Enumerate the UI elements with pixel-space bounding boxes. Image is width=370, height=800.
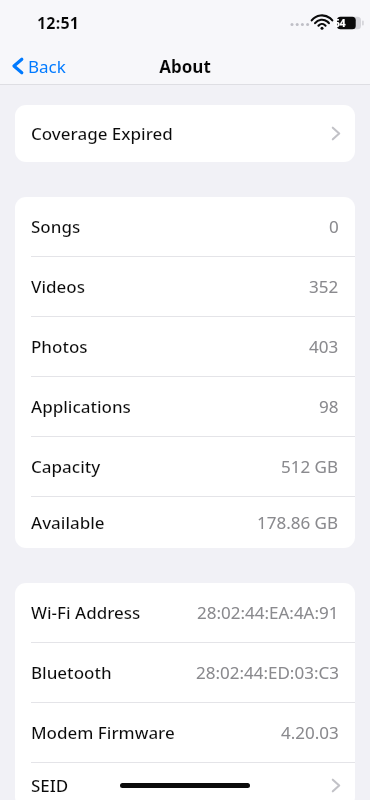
staticText: Applications — [31, 395, 131, 418]
staticText: Videos — [31, 275, 85, 298]
button[interactable]: Back — [6, 50, 72, 82]
staticText: 28:02:44:EA:4A:91 — [197, 601, 339, 624]
staticText: Coverage Expired — [31, 122, 173, 145]
staticText: Bluetooth — [31, 661, 112, 684]
staticText: Available — [31, 511, 105, 534]
staticText: 12:51 — [37, 12, 80, 34]
button[interactable]: Wi-Fi Address — [15, 583, 355, 642]
staticText: 0 — [329, 215, 339, 238]
button[interactable]: Coverage Expired — [15, 105, 355, 162]
staticText: 98 — [319, 395, 339, 418]
other: Open details — [331, 777, 341, 794]
button[interactable]: Photos — [15, 317, 355, 376]
button[interactable]: Bluetooth — [15, 643, 355, 702]
other: Open details — [331, 125, 341, 142]
button[interactable]: Applications — [15, 377, 355, 436]
staticText: 403 — [309, 335, 339, 358]
staticText: Capacity — [31, 455, 101, 478]
staticText: Back — [28, 55, 66, 78]
staticText: 352 — [309, 275, 339, 298]
button[interactable]: Songs — [15, 197, 355, 256]
staticText: 28:02:44:ED:03:C3 — [196, 661, 339, 684]
staticText: Photos — [31, 335, 88, 358]
staticText: Modem Firmware — [31, 721, 175, 744]
button[interactable]: Videos — [15, 257, 355, 316]
staticText: SEID — [31, 774, 69, 797]
staticText: 512 GB — [281, 455, 339, 478]
staticText: Wi-Fi Address — [31, 601, 141, 624]
staticText: 178.86 GB — [257, 511, 339, 534]
staticText: About — [0, 55, 370, 78]
button[interactable]: Available — [15, 497, 355, 548]
button[interactable]: Capacity — [15, 437, 355, 496]
button[interactable]: SEID — [15, 763, 355, 800]
staticText: 64 — [334, 16, 346, 30]
button[interactable]: Modem Firmware — [15, 703, 355, 762]
staticText: 4.20.03 — [281, 721, 339, 744]
staticText: Songs — [31, 215, 81, 238]
